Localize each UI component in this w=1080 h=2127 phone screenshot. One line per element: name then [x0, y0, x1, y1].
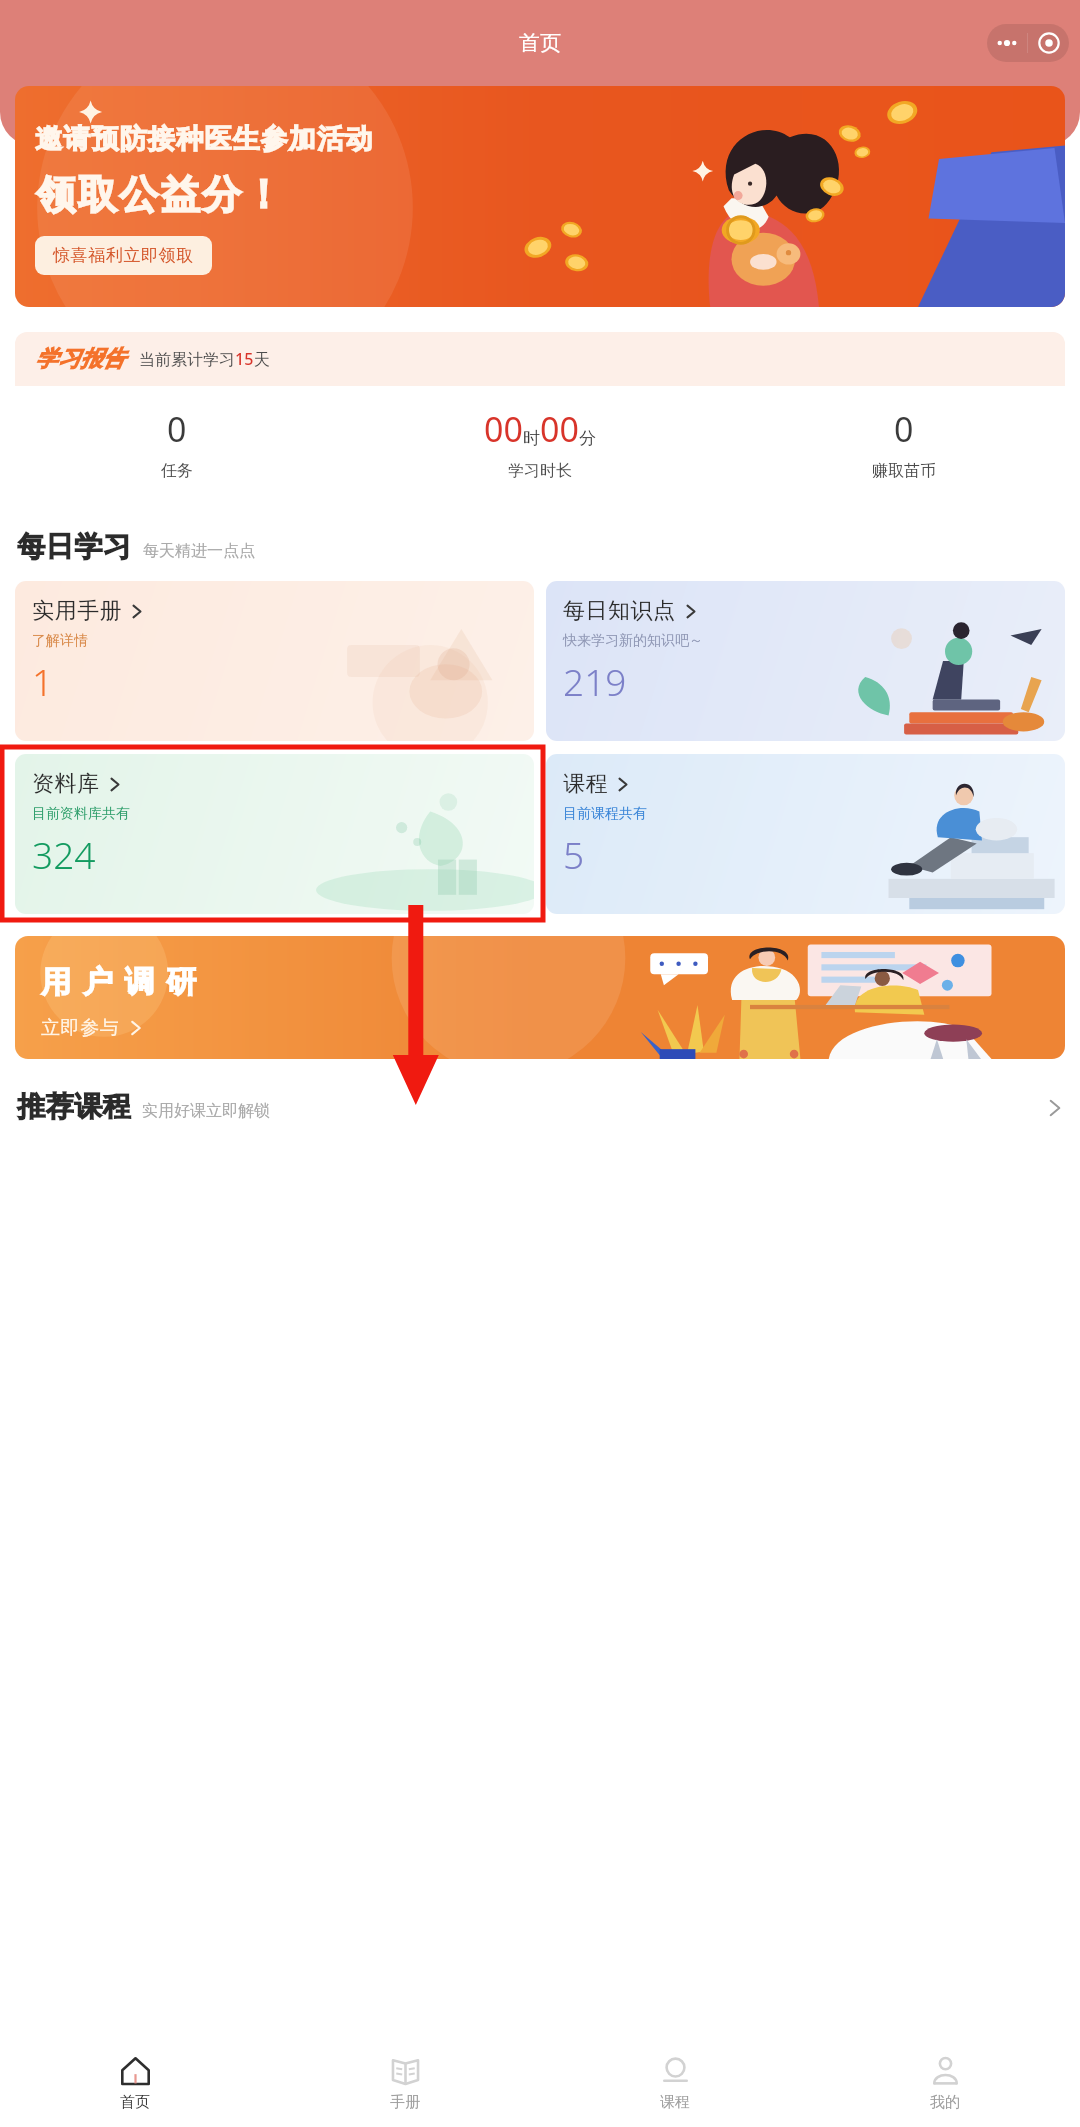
staticText: 惊喜福利立即领取: [53, 245, 194, 266]
staticText: 时: [523, 428, 540, 449]
staticText: 00: [540, 406, 579, 452]
staticText: 立即参与: [41, 1016, 120, 1040]
button[interactable]: 学习报告: [15, 332, 1065, 503]
staticText: 目前资料库共有: [32, 805, 130, 823]
staticText: 学习报告: [35, 345, 125, 373]
staticText: 324: [32, 829, 96, 879]
staticText: 实用手册: [32, 597, 122, 625]
button[interactable]: 每日知识点: [546, 581, 1065, 741]
staticText: 赚取苗币: [872, 461, 936, 481]
button[interactable]: 用 户 调 研: [15, 936, 1065, 1059]
staticText: 分: [579, 428, 596, 449]
staticText: 学习时长: [508, 461, 572, 481]
staticText: 219: [563, 656, 627, 706]
staticText: 每日知识点: [563, 597, 676, 625]
staticText: 资料库: [32, 770, 100, 798]
staticText: 5: [563, 829, 585, 879]
staticText: 天: [254, 350, 270, 370]
staticText: 15: [235, 348, 254, 370]
button[interactable]: 邀请预防接种医生参加活动: [15, 86, 1065, 307]
button[interactable]: 实用手册: [15, 581, 534, 741]
button[interactable]: 推荐课程: [17, 1089, 1063, 1124]
button[interactable]: 我的: [810, 2040, 1080, 2127]
staticText: 首页: [519, 30, 561, 56]
button[interactable]: Close: [1028, 24, 1069, 62]
staticText: 用 户 调 研: [41, 960, 199, 1001]
staticText: 实用好课立即解锁: [142, 1101, 270, 1121]
staticText: 任务: [161, 461, 193, 481]
staticText: 课程: [563, 770, 608, 798]
button[interactable]: 惊喜福利立即领取: [35, 236, 212, 275]
staticText: 推荐课程: [17, 1089, 131, 1124]
staticText: 首页: [120, 2093, 150, 2112]
staticText: 快来学习新的知识吧～: [563, 632, 703, 650]
staticText: 每日学习: [17, 529, 131, 564]
staticText: 邀请预防接种医生参加活动: [35, 122, 374, 156]
staticText: 00: [484, 406, 523, 452]
staticText: 了解详情: [32, 632, 88, 650]
button[interactable]: 手册: [270, 2040, 540, 2127]
button[interactable]: 课程: [540, 2040, 810, 2127]
staticText: 我的: [930, 2093, 960, 2112]
staticText: 0: [167, 406, 187, 452]
staticText: 当前累计学习: [139, 350, 235, 370]
staticText: 0: [894, 406, 914, 452]
button[interactable]: 资料库: [15, 754, 534, 914]
button[interactable]: More: [987, 24, 1027, 62]
button[interactable]: 首页: [0, 2040, 270, 2127]
staticText: 每天精进一点点: [143, 541, 255, 561]
staticText: 手册: [390, 2093, 420, 2112]
staticText: 目前课程共有: [563, 805, 647, 823]
staticText: 领取公益分！: [35, 170, 284, 219]
staticText: 课程: [660, 2093, 690, 2112]
staticText: 1: [32, 656, 54, 706]
button[interactable]: 课程: [546, 754, 1065, 914]
